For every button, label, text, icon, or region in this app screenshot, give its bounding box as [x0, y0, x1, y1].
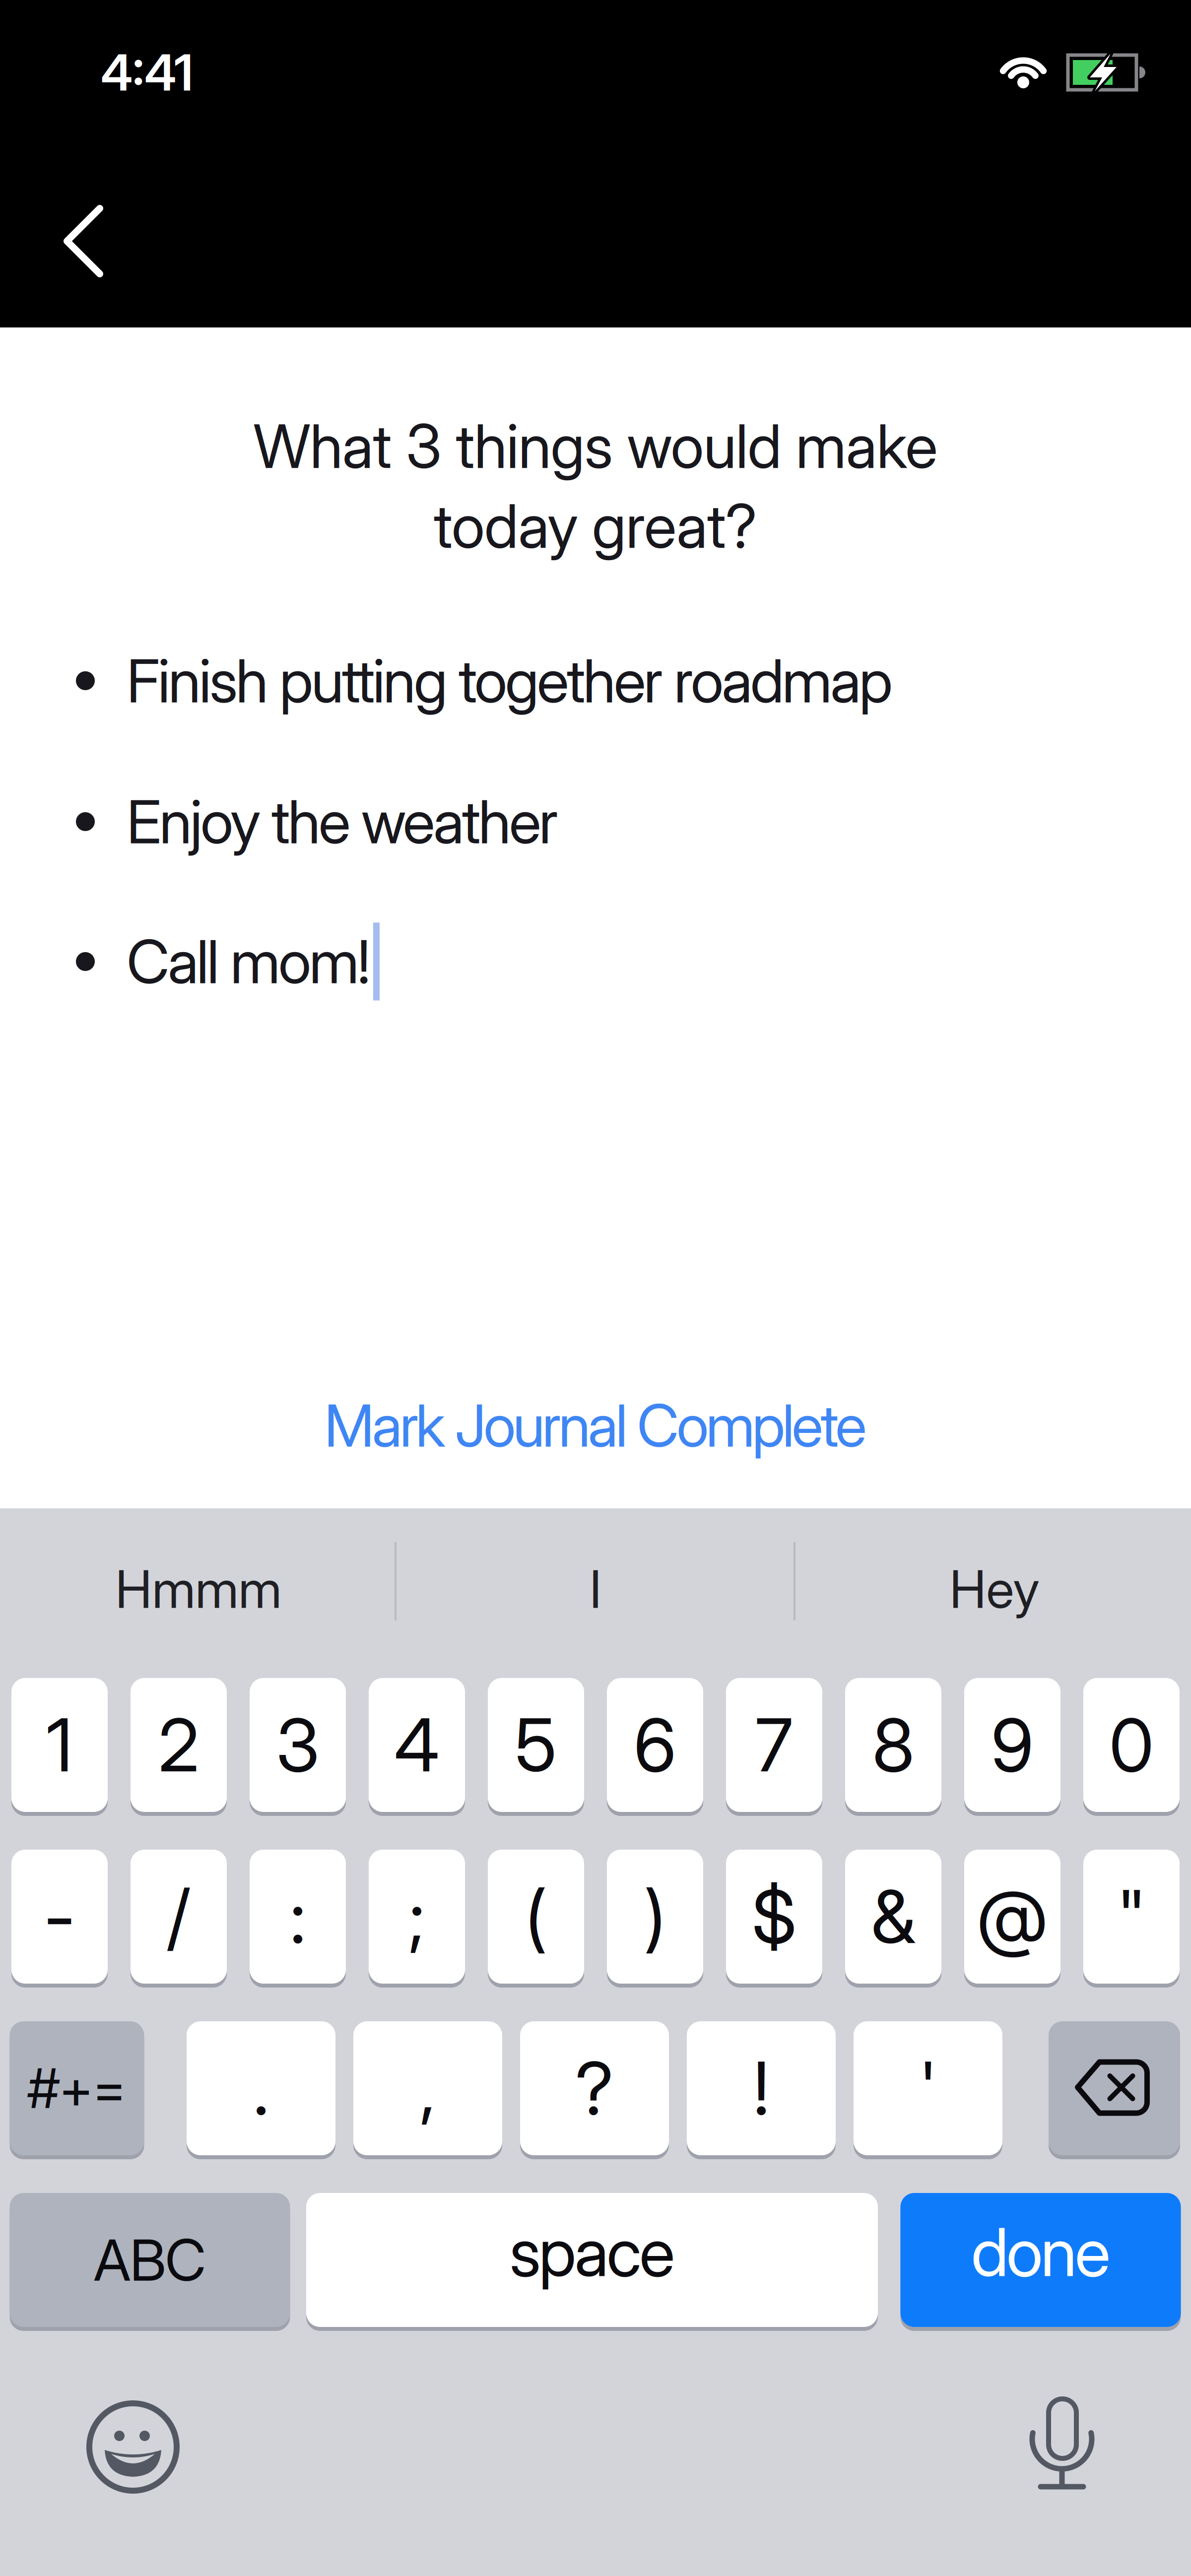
- staticText: 3: [276, 1701, 320, 1789]
- staticText: Mark Journal Complete: [324, 1390, 867, 1461]
- button[interactable]: -: [11, 1846, 108, 1988]
- button[interactable]: space: [306, 2189, 878, 2331]
- button[interactable]: /: [131, 1846, 227, 1988]
- staticText: @: [977, 1873, 1048, 1961]
- button[interactable]: 6: [607, 1674, 703, 1816]
- button[interactable]: I: [427, 1532, 764, 1646]
- staticText: -: [44, 1873, 75, 1961]
- staticText: (: [525, 1873, 547, 1961]
- staticText: ): [644, 1873, 666, 1961]
- staticText: ': [919, 2044, 937, 2132]
- button[interactable]: ': [854, 2017, 1002, 2159]
- button[interactable]: done: [900, 2189, 1181, 2331]
- staticText: #+=: [27, 2055, 127, 2121]
- staticText: What 3 things would make: [253, 410, 938, 482]
- button[interactable]: (: [488, 1846, 584, 1988]
- staticText: 7: [755, 1701, 793, 1789]
- staticText: $: [752, 1873, 796, 1961]
- staticText: 8: [872, 1701, 914, 1789]
- button[interactable]: .: [187, 2017, 335, 2159]
- staticText: Finish putting together roadmap: [127, 645, 893, 717]
- staticText: 4:41: [101, 42, 193, 102]
- button[interactable]: ,: [353, 2017, 502, 2159]
- button[interactable]: 2: [131, 1674, 227, 1816]
- staticText: Call mom!: [127, 926, 370, 998]
- staticText: 4: [394, 1701, 439, 1789]
- button[interactable]: Hmmm: [30, 1532, 367, 1646]
- staticText: done: [971, 2212, 1110, 2292]
- staticText: :: [290, 1873, 306, 1961]
- staticText: /: [167, 1873, 191, 1961]
- staticText: 0: [1109, 1701, 1154, 1789]
- staticText: 1: [46, 1701, 73, 1789]
- staticText: 2: [158, 1701, 199, 1789]
- staticText: today great?: [434, 489, 757, 562]
- button[interactable]: 7: [726, 1674, 822, 1816]
- staticText: Enjoy the weather: [127, 786, 558, 858]
- staticText: space: [509, 2212, 675, 2292]
- button[interactable]: Mark Journal Complete: [149, 1376, 1042, 1475]
- button[interactable]: !: [687, 2017, 836, 2159]
- button[interactable]: Back: [48, 187, 122, 296]
- button[interactable]: &: [845, 1846, 941, 1988]
- button[interactable]: 3: [250, 1674, 346, 1816]
- staticText: ?: [575, 2044, 614, 2132]
- button[interactable]: Dictate: [1027, 2394, 1097, 2494]
- button[interactable]: ;: [369, 1846, 465, 1988]
- button[interactable]: ABC: [10, 2189, 290, 2331]
- button[interactable]: #+=: [10, 2017, 144, 2159]
- button[interactable]: ): [607, 1846, 703, 1988]
- button[interactable]: 5: [488, 1674, 584, 1816]
- staticText: ABC: [94, 2226, 206, 2294]
- button[interactable]: Delete: [1049, 2017, 1180, 2159]
- button[interactable]: 0: [1083, 1674, 1180, 1816]
- button[interactable]: 1: [11, 1674, 108, 1816]
- button[interactable]: Emoji: [86, 2400, 180, 2494]
- button[interactable]: @: [964, 1846, 1060, 1988]
- button[interactable]: 9: [964, 1674, 1060, 1816]
- staticText: ": [1117, 1873, 1146, 1961]
- button[interactable]: Hey: [826, 1532, 1163, 1646]
- button[interactable]: $: [726, 1846, 822, 1988]
- staticText: 6: [634, 1701, 676, 1789]
- button[interactable]: ?: [520, 2017, 669, 2159]
- button[interactable]: 4: [369, 1674, 465, 1816]
- staticText: Hey: [950, 1558, 1039, 1620]
- staticText: .: [253, 2044, 269, 2132]
- staticText: !: [753, 2044, 769, 2132]
- staticText: ,: [420, 2044, 436, 2132]
- button[interactable]: :: [250, 1846, 346, 1988]
- staticText: I: [590, 1558, 601, 1620]
- staticText: 5: [515, 1701, 557, 1789]
- button[interactable]: ": [1083, 1846, 1180, 1988]
- button[interactable]: 8: [845, 1674, 941, 1816]
- staticText: Hmmm: [115, 1558, 282, 1620]
- staticText: &: [871, 1873, 915, 1961]
- staticText: 9: [991, 1701, 1034, 1789]
- staticText: ;: [409, 1873, 425, 1961]
